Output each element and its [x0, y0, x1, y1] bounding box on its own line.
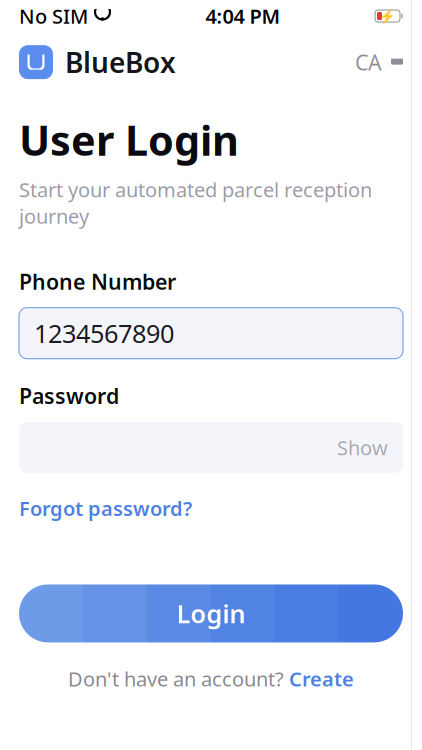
staticText: Show — [337, 434, 388, 461]
staticText: Forgot password? — [19, 495, 192, 522]
button[interactable]: Forgot password? — [0, 491, 211, 526]
staticText: Login — [176, 597, 245, 630]
staticText: Create — [289, 665, 354, 692]
button[interactable]: 1234567890 — [0, 308, 422, 359]
staticText: User Login — [19, 112, 239, 167]
staticText: 1234567890 — [34, 316, 174, 350]
button[interactable]: Show — [0, 422, 422, 473]
staticText: 4:04 PM — [205, 3, 280, 29]
staticText: Phone Number — [19, 267, 176, 296]
button[interactable]: Create — [289, 662, 354, 695]
staticText: Start your automated parcel reception jo… — [19, 176, 372, 229]
button[interactable]: CA — [355, 42, 403, 82]
staticText: No SIM — [19, 3, 88, 29]
staticText: ⚡ — [379, 8, 396, 24]
staticText: Don't have an account? — [68, 665, 289, 692]
staticText: Password — [19, 382, 119, 410]
button[interactable]: Login — [0, 584, 422, 642]
staticText: CA — [355, 48, 382, 76]
staticText: BlueBox — [65, 44, 176, 81]
